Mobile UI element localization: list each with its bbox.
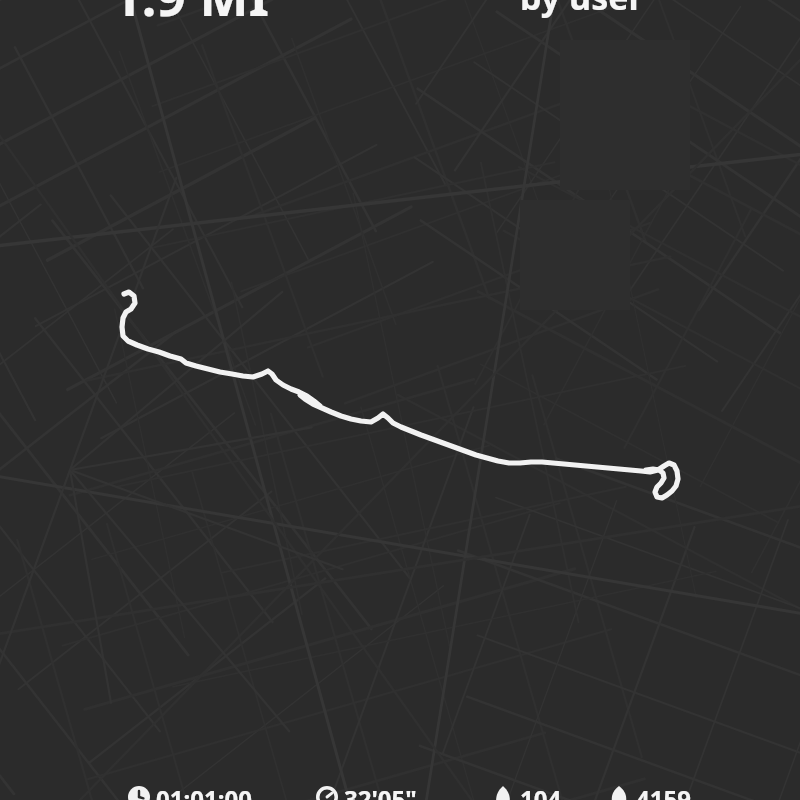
staticText: 4159 [636, 782, 691, 800]
staticText: 32'05" [344, 782, 417, 800]
button[interactable]: 1.9 MI [112, 0, 269, 31]
staticText: 01:01:00 [156, 782, 252, 800]
button[interactable]: Duration [128, 782, 288, 800]
button[interactable]: Average pace [316, 782, 476, 800]
staticText: 104 [520, 782, 562, 800]
button[interactable]: Calories [492, 782, 652, 800]
button[interactable]: by user [520, 0, 644, 20]
button[interactable]: Steps [608, 782, 768, 800]
